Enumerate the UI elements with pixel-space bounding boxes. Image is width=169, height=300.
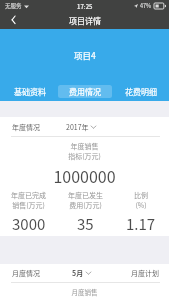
staticText: 基础资料 [14, 86, 46, 98]
button[interactable]: 月度情况 [0, 264, 169, 282]
button[interactable]: 费用情况 [58, 85, 112, 98]
staticText: 费用情况 [69, 86, 101, 98]
button[interactable]: Back [0, 12, 24, 29]
staticText: 1000000 [0, 164, 169, 187]
staticText: 比例 (%) [134, 190, 148, 210]
staticText: 花费明细 [125, 86, 157, 98]
staticText: 35 [77, 213, 94, 235]
staticText: 月度情况 [12, 268, 40, 278]
staticText: 3000 [12, 213, 46, 235]
button[interactable]: 花费明细 [114, 85, 168, 98]
staticText: 年度已发生 费用(万元) [68, 190, 103, 210]
staticText: 项目4 [74, 49, 96, 61]
staticText: 无服务 [5, 2, 22, 10]
staticText: 17:25 [77, 2, 93, 11]
staticText: 项目详情 [69, 15, 101, 27]
staticText: 年度情况 [12, 122, 40, 132]
button[interactable]: 年度情况 [0, 117, 169, 136]
staticText: 1.17 [126, 213, 156, 235]
staticText: 年度已完成 销售(万元) [11, 190, 46, 210]
staticText: 年度销售 指标(万元) [0, 141, 169, 161]
button[interactable]: 基础资料 [3, 85, 57, 98]
staticText: 月度销售 [0, 287, 169, 296]
staticText: 5月 [72, 268, 84, 278]
staticText: 2017年 [66, 122, 89, 132]
staticText: 月度计划 [131, 268, 159, 278]
staticText: 47% [140, 2, 152, 10]
